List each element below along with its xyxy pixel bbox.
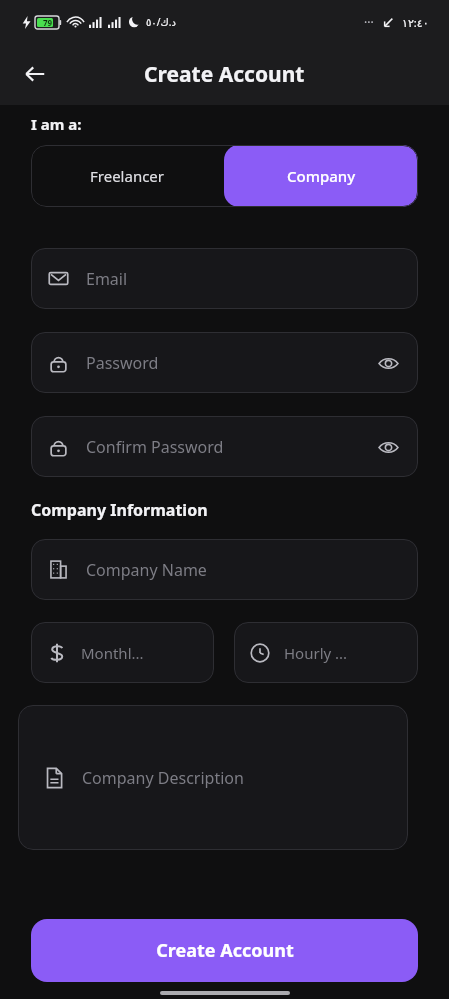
button[interactable]: Freelancer — [31, 145, 224, 207]
staticText: Company — [287, 166, 356, 186]
staticText: Freelancer — [90, 166, 165, 186]
staticText: Password — [86, 352, 375, 374]
staticText: ١٢:٤٠ — [402, 15, 429, 30]
staticText: Company Name — [86, 559, 401, 581]
button[interactable]: Company Name — [31, 539, 418, 600]
button[interactable]: Create Account — [31, 919, 418, 982]
button[interactable]: Password — [31, 332, 418, 393]
staticText: Create Account — [144, 60, 305, 89]
button[interactable]: Hourly ... — [234, 622, 418, 683]
staticText: Create Account — [156, 938, 294, 963]
button[interactable]: Company Description — [18, 705, 408, 850]
staticText: I am a: — [31, 114, 82, 134]
staticText: ··· — [364, 14, 374, 30]
button[interactable]: Toggle password visibility — [375, 434, 401, 460]
button[interactable]: Company — [224, 145, 418, 207]
staticText: د.ك/٥٠ — [146, 15, 176, 29]
staticText: Company Description — [82, 767, 244, 789]
staticText: Confirm Password — [86, 436, 375, 458]
staticText: Monthl... — [81, 643, 144, 663]
button[interactable]: Toggle password visibility — [375, 350, 401, 376]
staticText: 79 — [43, 17, 53, 28]
button[interactable]: Back — [14, 53, 56, 95]
button[interactable]: Monthl... — [31, 622, 214, 683]
staticText: Company Information — [31, 499, 208, 521]
staticText: Hourly ... — [284, 643, 348, 663]
button[interactable]: Email — [31, 248, 418, 309]
button[interactable]: Confirm Password — [31, 416, 418, 477]
staticText: Email — [86, 268, 401, 290]
